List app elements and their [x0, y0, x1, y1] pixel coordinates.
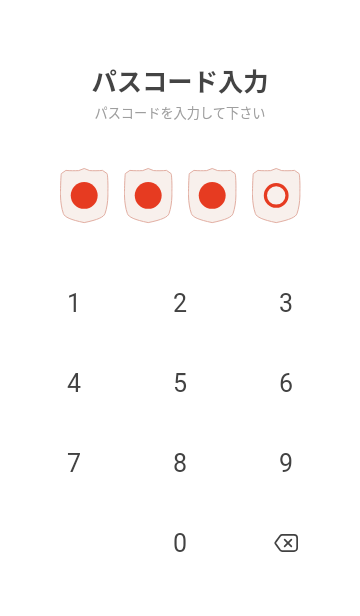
staticText: 3: [279, 289, 294, 318]
button[interactable]: 7: [21, 423, 127, 503]
staticText: 9: [279, 449, 294, 478]
button[interactable]: 9: [233, 423, 339, 503]
staticText: パスコード入力: [0, 62, 360, 99]
button[interactable]: 5: [127, 343, 233, 423]
staticText: 2: [173, 289, 188, 318]
button[interactable]: 8: [127, 423, 233, 503]
staticText: 8: [173, 449, 188, 478]
button[interactable]: 1: [21, 263, 127, 343]
button[interactable]: Backspace: [233, 503, 339, 583]
other: Backspace: [274, 534, 298, 552]
button[interactable]: 0: [127, 503, 233, 583]
button[interactable]: 6: [233, 343, 339, 423]
staticText: 5: [173, 369, 188, 398]
staticText: 6: [279, 369, 294, 398]
button[interactable]: 3: [233, 263, 339, 343]
staticText: 0: [173, 529, 188, 558]
staticText: 7: [67, 449, 82, 478]
button[interactable]: 4: [21, 343, 127, 423]
staticText: 4: [67, 369, 82, 398]
button[interactable]: 2: [127, 263, 233, 343]
staticText: 1: [67, 289, 82, 318]
staticText: パスコードを入力して下さい: [0, 103, 360, 122]
